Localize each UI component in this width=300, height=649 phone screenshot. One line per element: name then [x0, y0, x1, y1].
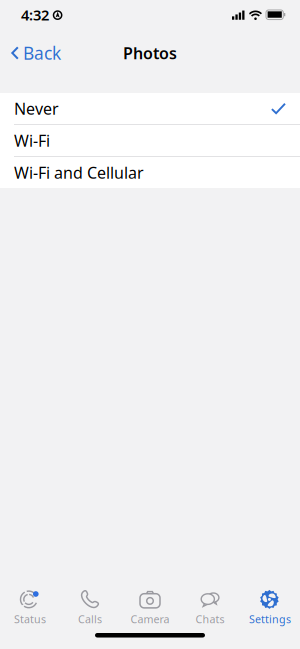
staticText: Calls [78, 612, 102, 626]
staticText: Back [23, 41, 61, 64]
button[interactable]: Camera [120, 578, 180, 622]
button[interactable]: Settings [240, 578, 300, 622]
button[interactable]: Back [0, 35, 72, 71]
staticText: 4:32 [21, 5, 49, 24]
staticText: Camera [130, 612, 169, 626]
staticText: Settings [249, 612, 291, 626]
button[interactable]: Status [0, 578, 60, 622]
staticText: Chats [195, 612, 224, 626]
button[interactable]: Calls [60, 578, 120, 622]
staticText: Wi-Fi and Cellular [14, 162, 144, 183]
button[interactable]: Chats [180, 578, 240, 622]
staticText: Photos [123, 42, 177, 64]
button[interactable]: Wi-Fi and Cellular [0, 157, 300, 188]
staticText: Wi-Fi [14, 130, 50, 151]
button[interactable]: Wi-Fi [0, 125, 300, 156]
staticText: Never [14, 98, 59, 119]
button[interactable]: Never [0, 93, 300, 124]
staticText: Status [14, 612, 46, 626]
